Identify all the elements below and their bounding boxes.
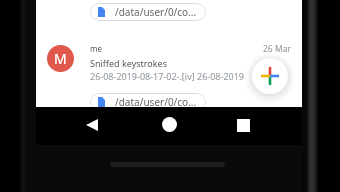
button[interactable]: /data/user/0/co... xyxy=(90,3,206,21)
staticText: 26 Mar xyxy=(263,43,291,55)
button[interactable]: Back xyxy=(81,114,103,136)
staticText: /data/user/0/co... xyxy=(115,5,197,19)
button[interactable]: Compose xyxy=(252,58,288,94)
button[interactable]: Recents xyxy=(232,114,254,136)
button[interactable]: /data/user/0/co... xyxy=(90,93,206,111)
staticText: me xyxy=(90,43,102,54)
staticText: /data/user/0/co... xyxy=(115,95,197,109)
staticText: 26-08-2019-08-17-02-.[iv] 26-08-2019 xyxy=(90,70,245,82)
button[interactable]: Home xyxy=(158,113,181,136)
staticText: M xyxy=(54,49,67,68)
staticText: Sniffed keystrokes xyxy=(90,57,167,69)
button[interactable]: M xyxy=(36,41,302,89)
